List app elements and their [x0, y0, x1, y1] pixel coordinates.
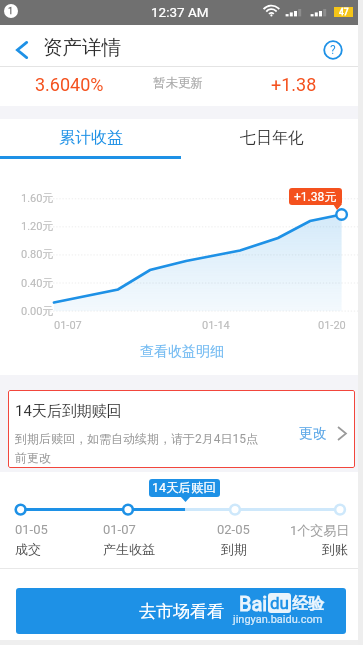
staticText: 到期	[221, 541, 247, 557]
staticText: 产生收益	[103, 541, 155, 557]
staticText: 七日年化	[240, 128, 304, 148]
staticText: 前更改	[15, 450, 51, 465]
staticText: 1.60元	[21, 191, 54, 205]
button[interactable]: Help	[313, 25, 355, 67]
button[interactable]: Back	[2, 25, 42, 67]
staticText: 到账	[322, 541, 348, 557]
staticText: 14天后赎回	[152, 480, 217, 496]
staticText: jingyan.baidu.com	[233, 613, 323, 626]
staticText: 暂未更新	[153, 75, 203, 91]
staticText: +1.38	[271, 74, 317, 95]
staticText: 3.6040%	[35, 74, 104, 95]
staticText: 去市场看看	[139, 601, 224, 622]
staticText: 1个交易日	[290, 522, 350, 538]
staticText: 更改	[299, 425, 327, 443]
staticText: 1.20元	[21, 219, 54, 233]
staticText: 01-20	[318, 319, 346, 332]
staticText: 47	[339, 7, 349, 17]
staticText: 01-07	[103, 522, 136, 537]
staticText: +1.38元	[294, 189, 337, 204]
staticText: 到期后赎回，如需自动续期，请于2月4日15点	[15, 431, 258, 446]
staticText: 0.40元	[21, 276, 54, 290]
button[interactable]: 查看收益明细	[0, 334, 363, 375]
staticText: 累计收益	[59, 128, 123, 148]
staticText: 经验	[292, 594, 324, 614]
staticText: 成交	[15, 541, 41, 557]
staticText: 14天后到期赎回	[15, 402, 122, 421]
staticText: 01-07	[54, 319, 82, 332]
staticText: Bai	[239, 592, 268, 615]
staticText: 查看收益明细	[140, 343, 224, 361]
button[interactable]: 七日年化	[181, 119, 363, 156]
staticText: 0.80元	[21, 247, 54, 261]
staticText: 01-14	[202, 319, 230, 332]
staticText: du	[270, 593, 289, 613]
staticText: ?	[330, 43, 336, 57]
button[interactable]: 去市场看看	[16, 588, 346, 634]
staticText: 12:37 AM	[151, 4, 209, 20]
button[interactable]: 14天后到期赎回	[8, 390, 355, 468]
staticText: 1	[8, 6, 14, 17]
staticText: 01-05	[15, 522, 48, 537]
staticText: 0.00元	[21, 304, 54, 318]
button[interactable]: 累计收益	[0, 119, 181, 156]
staticText: 资产详情	[43, 35, 121, 60]
staticText: 02-05	[217, 522, 250, 537]
